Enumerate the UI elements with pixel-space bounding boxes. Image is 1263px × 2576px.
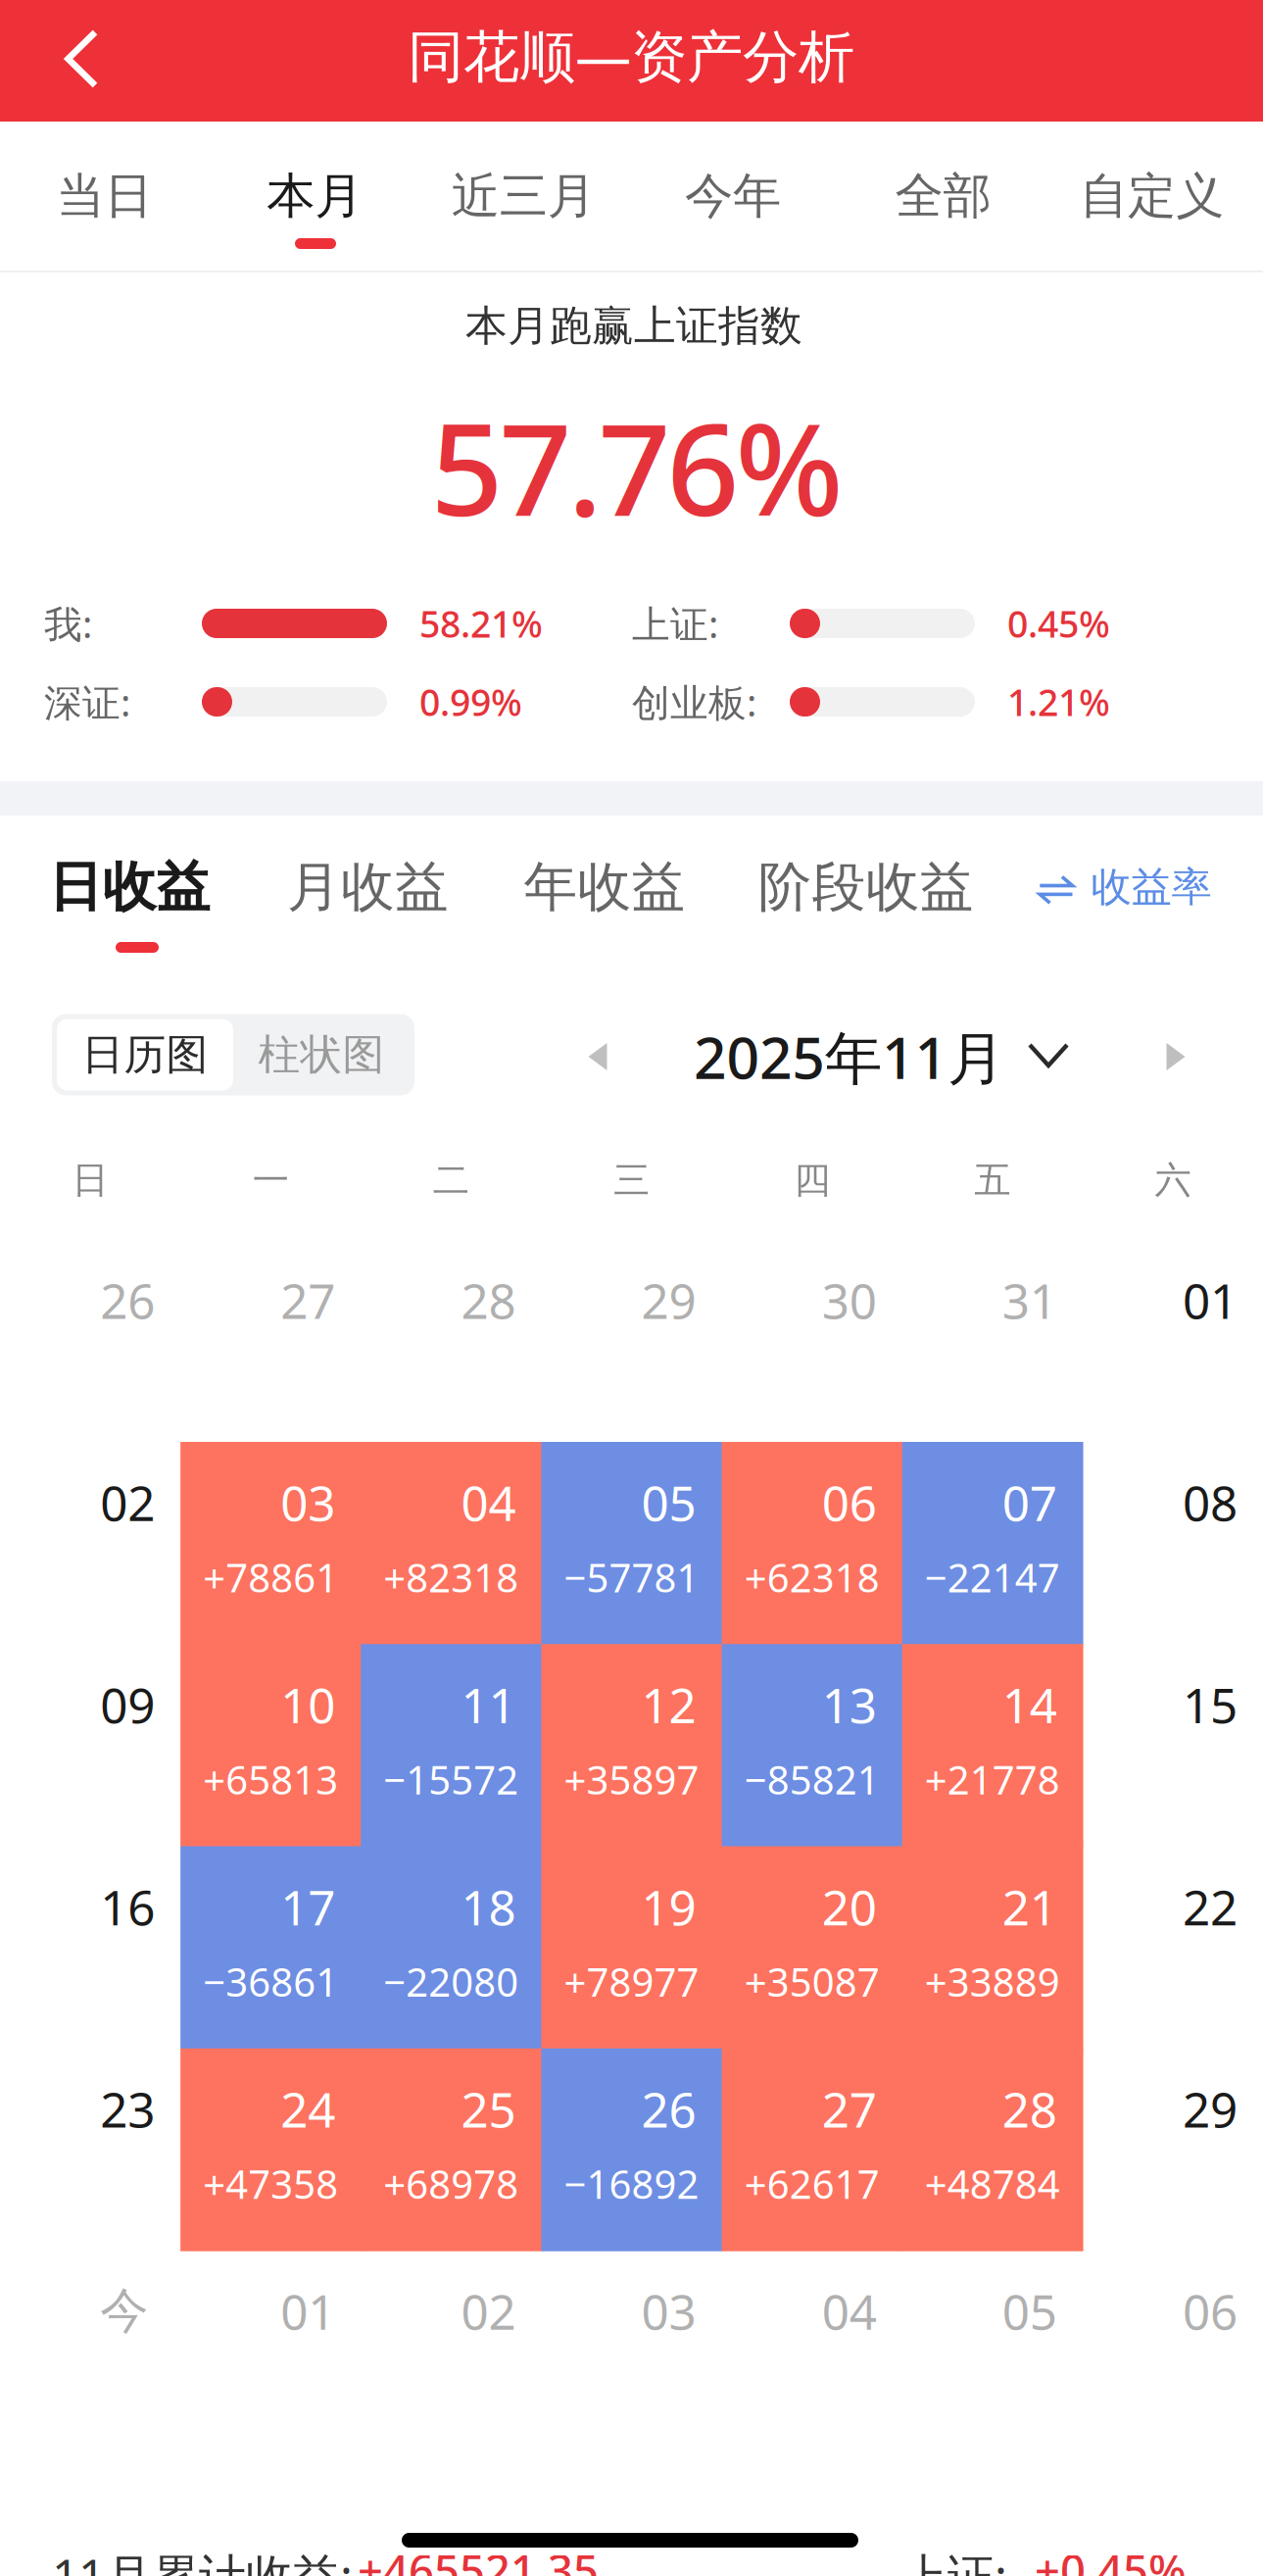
staticText: 22 — [1183, 1874, 1238, 1939]
button[interactable]: 31 — [902, 1240, 1083, 1442]
staticText: 0.45% — [1007, 599, 1110, 648]
staticText: 05 — [1002, 2279, 1057, 2343]
staticText: 六 — [1155, 1158, 1191, 1203]
button[interactable]: 02 — [0, 1442, 180, 1644]
staticText: −57781 — [564, 1551, 699, 1603]
staticText: 23 — [100, 2077, 155, 2141]
button[interactable]: 04 — [361, 1442, 541, 1644]
button[interactable]: 自定义 — [1046, 120, 1257, 272]
staticText: 深证: — [44, 677, 130, 727]
button[interactable]: 10 — [180, 1644, 361, 1846]
button[interactable]: 08 — [1083, 1442, 1263, 1644]
button[interactable]: 30 — [722, 1240, 902, 1442]
staticText: 25 — [461, 2077, 516, 2141]
staticText: 27 — [281, 1268, 335, 1332]
button[interactable]: 上个月 — [555, 1016, 640, 1098]
button[interactable]: 06 — [1083, 2251, 1263, 2453]
button[interactable]: 日收益 — [36, 814, 222, 961]
staticText: 20 — [822, 1874, 877, 1939]
button[interactable]: 12 — [541, 1644, 722, 1846]
button[interactable]: 下个月 — [1133, 1016, 1218, 1098]
button[interactable]: 18 — [361, 1846, 541, 2048]
staticText: 01 — [1183, 1268, 1238, 1332]
staticText: 28 — [461, 1268, 516, 1332]
button[interactable]: 13 — [722, 1644, 902, 1846]
staticText: 自定义 — [1080, 166, 1224, 226]
staticText: 06 — [1183, 2279, 1238, 2343]
button[interactable]: 01 — [1083, 1240, 1263, 1442]
button[interactable]: 日历图 — [57, 1019, 233, 1090]
button[interactable]: 23 — [0, 2048, 180, 2251]
button[interactable]: 17 — [180, 1846, 361, 2048]
staticText: 02 — [461, 2279, 516, 2343]
button[interactable]: 05 — [541, 1442, 722, 1644]
button[interactable]: 22 — [1083, 1846, 1263, 2048]
staticText: +62617 — [744, 2158, 879, 2210]
button[interactable]: 24 — [180, 2048, 361, 2251]
button[interactable]: 04 — [722, 2251, 902, 2453]
button[interactable]: 26 — [541, 2048, 722, 2251]
button[interactable]: 柱状图 — [233, 1019, 410, 1090]
button[interactable]: 收益率 — [1029, 848, 1254, 946]
staticText: 28 — [1002, 2077, 1057, 2141]
button[interactable]: 25 — [361, 2048, 541, 2251]
button[interactable]: 06 — [722, 1442, 902, 1644]
staticText: 阶段收益 — [758, 854, 974, 920]
button[interactable]: 01 — [180, 2251, 361, 2453]
staticText: +465521.35 — [358, 2541, 599, 2576]
button[interactable]: 14 — [902, 1644, 1083, 1846]
staticText: 柱状图 — [258, 1029, 385, 1080]
staticText: 今 — [100, 2281, 148, 2341]
staticText: 同花顺—资产分析 — [408, 18, 854, 92]
staticText: 12 — [641, 1672, 696, 1736]
staticText: 年收益 — [524, 854, 685, 920]
button[interactable]: 20 — [722, 1846, 902, 2048]
button[interactable]: 03 — [180, 1442, 361, 1644]
staticText: 21 — [1002, 1874, 1057, 1939]
staticText: 月收益 — [287, 854, 449, 920]
staticText: 本月跑赢上证指数 — [465, 300, 802, 352]
button[interactable]: 28 — [902, 2048, 1083, 2251]
staticText: 24 — [281, 2077, 335, 2141]
button[interactable]: 03 — [541, 2251, 722, 2453]
button[interactable]: 16 — [0, 1846, 180, 2048]
button[interactable]: 15 — [1083, 1644, 1263, 1846]
staticText: 一 — [253, 1158, 289, 1203]
button[interactable]: 今 — [0, 2251, 180, 2453]
button[interactable]: 月收益 — [275, 814, 461, 961]
button[interactable]: 29 — [541, 1240, 722, 1442]
staticText: +68978 — [384, 2158, 519, 2210]
button[interactable]: 阶段收益 — [743, 814, 988, 961]
staticText: 我: — [44, 598, 92, 649]
button[interactable]: 27 — [180, 1240, 361, 1442]
staticText: +21778 — [925, 1753, 1060, 1805]
button[interactable]: 02 — [361, 2251, 541, 2453]
button[interactable]: 当日 — [0, 120, 209, 272]
button[interactable]: 全部 — [838, 120, 1048, 272]
button[interactable]: 近三月 — [418, 120, 629, 272]
button[interactable]: 05 — [902, 2251, 1083, 2453]
staticText: +62318 — [744, 1551, 879, 1603]
button[interactable]: 年收益 — [511, 814, 698, 961]
button[interactable]: 选择月份 — [1006, 1015, 1091, 1097]
button[interactable]: 28 — [361, 1240, 541, 1442]
button[interactable]: 21 — [902, 1846, 1083, 2048]
button[interactable]: 本月 — [209, 120, 420, 272]
button[interactable]: 07 — [902, 1442, 1083, 1644]
staticText: 五 — [974, 1158, 1010, 1203]
button[interactable]: 27 — [722, 2048, 902, 2251]
staticText: −36861 — [203, 1955, 338, 2007]
button[interactable]: 29 — [1083, 2048, 1263, 2251]
button[interactable]: 19 — [541, 1846, 722, 2048]
staticText: 03 — [641, 2279, 696, 2343]
staticText: 29 — [1183, 2077, 1238, 2141]
staticText: 13 — [822, 1672, 877, 1736]
button[interactable]: 今年 — [628, 120, 838, 272]
button[interactable]: 26 — [0, 1240, 180, 1442]
staticText: 26 — [100, 1268, 155, 1332]
staticText: +33889 — [925, 1955, 1060, 2007]
button[interactable]: 11 — [361, 1644, 541, 1846]
button[interactable]: 09 — [0, 1644, 180, 1846]
button[interactable]: 返回 — [0, 0, 147, 122]
staticText: 二 — [433, 1158, 469, 1203]
